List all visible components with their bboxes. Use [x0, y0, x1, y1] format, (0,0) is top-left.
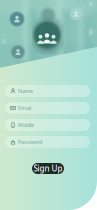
staticText: Email [18, 104, 31, 112]
staticText: Sign Up [33, 163, 62, 174]
button[interactable]: Email [5, 102, 90, 114]
staticText: Mobile [18, 121, 34, 129]
staticText: Name [18, 87, 33, 95]
button[interactable]: Password [5, 136, 90, 148]
button[interactable]: Name [5, 85, 90, 97]
button[interactable]: Mobile [5, 119, 90, 131]
staticText: Password [18, 138, 42, 146]
button[interactable]: Sign Up [32, 163, 64, 174]
